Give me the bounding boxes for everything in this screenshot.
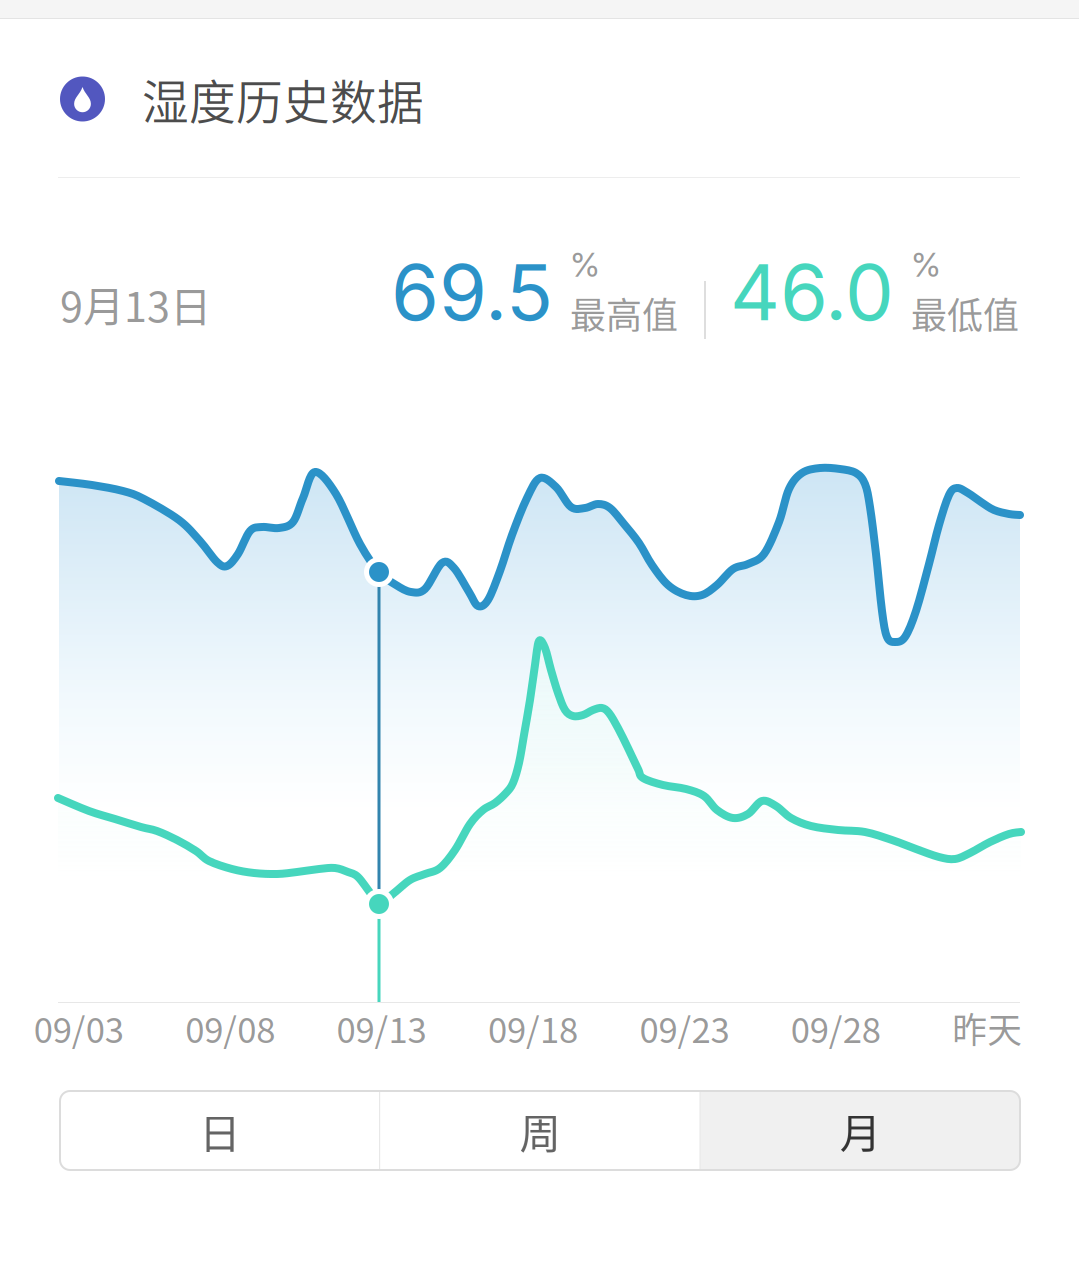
staticText: 09/23 [639, 1003, 729, 1053]
button[interactable]: 日 [60, 1091, 379, 1170]
staticText: 9月13日 [60, 274, 211, 334]
staticText: 最高值 [570, 287, 678, 339]
staticText: 周 [519, 1101, 560, 1160]
staticText: 09/03 [34, 1003, 124, 1053]
button[interactable]: 月 [701, 1091, 1020, 1170]
button[interactable]: 周 [380, 1091, 700, 1170]
staticText: % [570, 244, 600, 285]
staticText: 46.0 [730, 245, 894, 339]
staticText: 09/28 [791, 1003, 881, 1053]
staticText: 09/18 [488, 1003, 578, 1053]
staticText: 湿度历史数据 [142, 65, 424, 133]
staticText: 09/13 [337, 1003, 427, 1053]
staticText: 日 [199, 1101, 240, 1160]
staticText: 09/08 [185, 1003, 275, 1053]
staticText: 昨天 [952, 1003, 1022, 1053]
staticText: 69.5 [391, 245, 553, 339]
staticText: 最低值 [911, 287, 1019, 339]
staticText: % [911, 244, 941, 285]
staticText: 月 [840, 1101, 881, 1160]
